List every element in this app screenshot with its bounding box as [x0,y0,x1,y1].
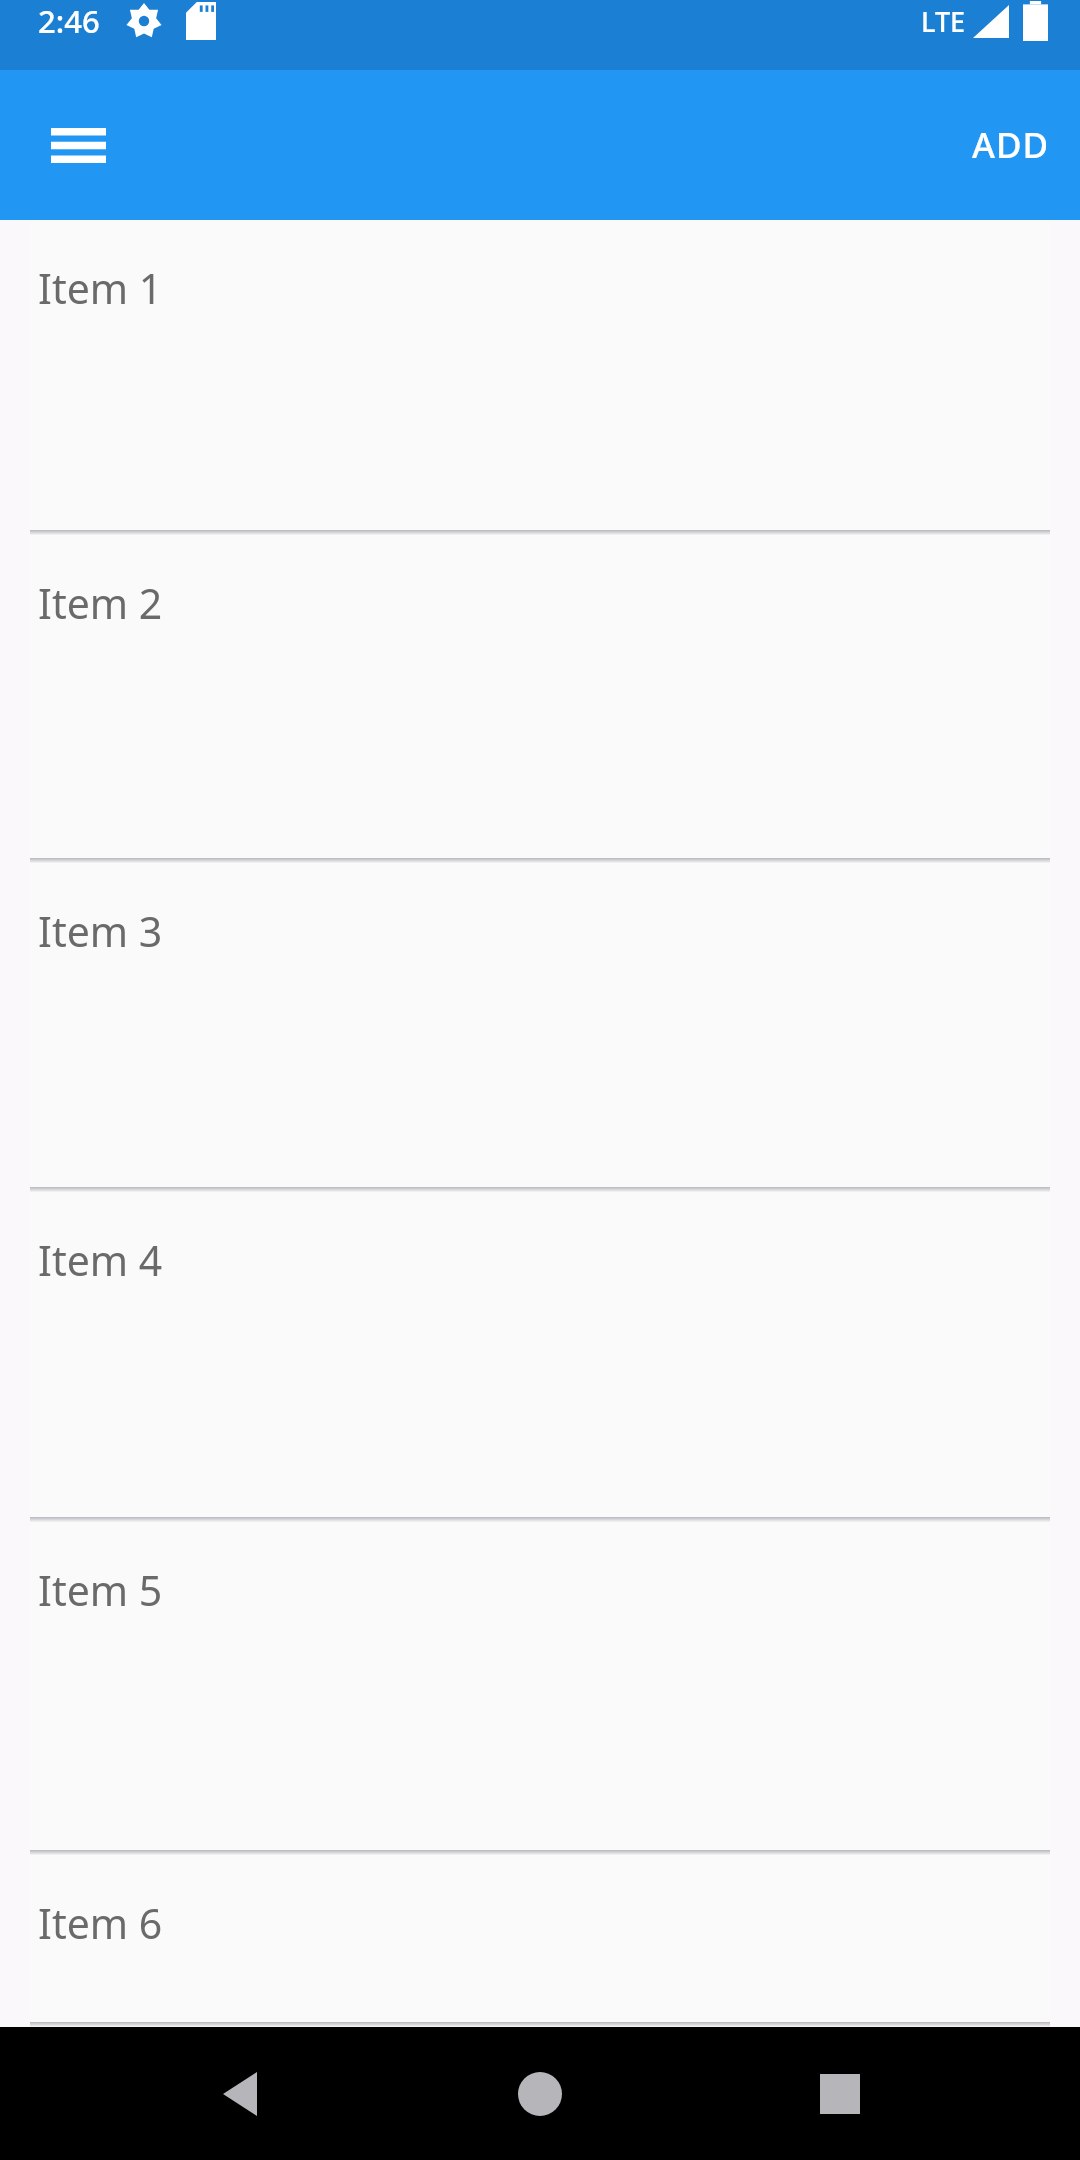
staticText: Item 5 [38,1562,163,1618]
button[interactable]: Item 2 [0,535,1080,863]
button[interactable]: Open navigation drawer [36,103,120,187]
button[interactable]: Home [480,2034,600,2154]
staticText: ADD [972,121,1050,169]
button[interactable]: Item 6 [0,1855,1080,2027]
staticText: Item 1 [38,260,163,316]
button[interactable]: Item 1 [0,220,1080,535]
staticText: 2:46 [38,0,100,42]
staticText: Item 2 [38,575,163,631]
staticText: Item 3 [38,903,163,959]
staticText: Item 6 [38,1895,163,1951]
button[interactable]: Item 5 [0,1522,1080,1855]
staticText: Item 4 [38,1232,163,1288]
button[interactable]: Back [180,2034,300,2154]
button[interactable]: Item 3 [0,863,1080,1192]
staticText: LTE [921,3,966,40]
button[interactable]: ADD [950,97,1072,193]
button[interactable]: Recent apps [780,2034,900,2154]
button[interactable]: Item 4 [0,1192,1080,1522]
